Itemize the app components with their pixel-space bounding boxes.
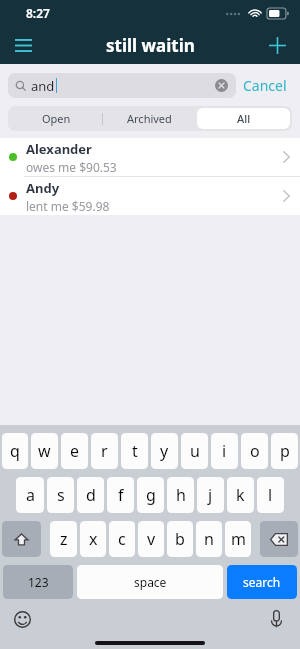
button[interactable]: Menu — [6, 28, 40, 62]
button[interactable]: h — [167, 477, 194, 513]
staticText: 123 — [28, 574, 49, 590]
staticText: e — [70, 440, 80, 462]
staticText: lent me $59.98 — [26, 198, 110, 214]
button[interactable]: Delete — [260, 521, 298, 557]
staticText: c — [118, 528, 126, 550]
staticText: n — [204, 528, 214, 550]
button[interactable]: r — [91, 433, 118, 469]
staticText: k — [236, 484, 245, 506]
staticText: 8:27 — [26, 5, 50, 21]
staticText: j — [208, 484, 213, 506]
staticText: p — [280, 440, 290, 462]
staticText: z — [60, 528, 68, 550]
staticText: l — [268, 484, 273, 506]
button[interactable]: e — [61, 433, 88, 469]
button[interactable]: q — [2, 433, 28, 469]
staticText: Alexander — [26, 140, 92, 158]
staticText: All — [237, 111, 251, 126]
staticText: Open — [42, 111, 71, 126]
staticText: a — [26, 484, 35, 506]
button[interactable]: b — [167, 521, 193, 557]
staticText: space — [134, 574, 167, 590]
button[interactable]: p — [271, 433, 298, 469]
staticText: s — [57, 484, 65, 506]
button[interactable]: l — [257, 477, 284, 513]
staticText: o — [250, 440, 260, 462]
staticText: t — [132, 440, 138, 462]
staticText: and — [31, 77, 55, 95]
button[interactable]: 123 — [3, 565, 73, 599]
button[interactable]: m — [225, 521, 251, 557]
button[interactable]: s — [47, 477, 74, 513]
button[interactable]: Open — [10, 108, 102, 129]
button[interactable]: o — [241, 433, 268, 469]
staticText: b — [175, 528, 185, 550]
staticText: u — [190, 440, 200, 462]
button[interactable]: n — [196, 521, 222, 557]
button[interactable]: a — [16, 477, 44, 513]
staticText: Andy — [26, 179, 60, 197]
button[interactable]: i — [211, 433, 238, 469]
button[interactable]: Shift — [2, 521, 41, 557]
button[interactable]: u — [181, 433, 208, 469]
staticText: search — [243, 574, 281, 590]
button[interactable]: Dictate — [262, 605, 290, 633]
button[interactable]: z — [50, 521, 77, 557]
staticText: f — [118, 484, 124, 506]
button[interactable]: k — [227, 477, 254, 513]
staticText: y — [160, 440, 169, 462]
staticText: x — [89, 528, 98, 550]
button[interactable]: g — [137, 477, 164, 513]
staticText: h — [176, 484, 186, 506]
staticText: i — [222, 440, 227, 462]
button[interactable]: Add — [260, 28, 294, 62]
staticText: owes me $90.53 — [26, 159, 117, 175]
button[interactable]: Andy — [0, 177, 300, 215]
button[interactable]: w — [31, 433, 58, 469]
button[interactable]: search — [227, 565, 297, 599]
staticText: r — [101, 440, 108, 462]
staticText: Cancel — [243, 76, 287, 95]
button[interactable]: Archived — [103, 108, 196, 129]
button[interactable]: v — [138, 521, 164, 557]
staticText: v — [147, 528, 156, 550]
button[interactable]: Cancel — [236, 72, 294, 99]
staticText: w — [38, 440, 51, 462]
button[interactable]: Alexander — [0, 138, 300, 176]
staticText: Archived — [127, 111, 172, 126]
button[interactable]: Emoji keyboard — [8, 605, 36, 633]
staticText: q — [10, 440, 20, 462]
staticText: d — [86, 484, 96, 506]
staticText: m — [231, 528, 246, 550]
button[interactable]: f — [107, 477, 134, 513]
button[interactable]: d — [77, 477, 104, 513]
button[interactable]: Clear search text — [214, 78, 229, 93]
button[interactable]: and — [8, 73, 236, 98]
button[interactable]: c — [109, 521, 135, 557]
button[interactable]: t — [121, 433, 148, 469]
button[interactable]: space — [77, 565, 223, 599]
staticText: g — [146, 484, 156, 506]
button[interactable]: j — [197, 477, 224, 513]
button[interactable]: y — [151, 433, 178, 469]
button[interactable]: All — [197, 108, 290, 129]
staticText: still waitin — [106, 34, 195, 57]
button[interactable]: x — [80, 521, 106, 557]
